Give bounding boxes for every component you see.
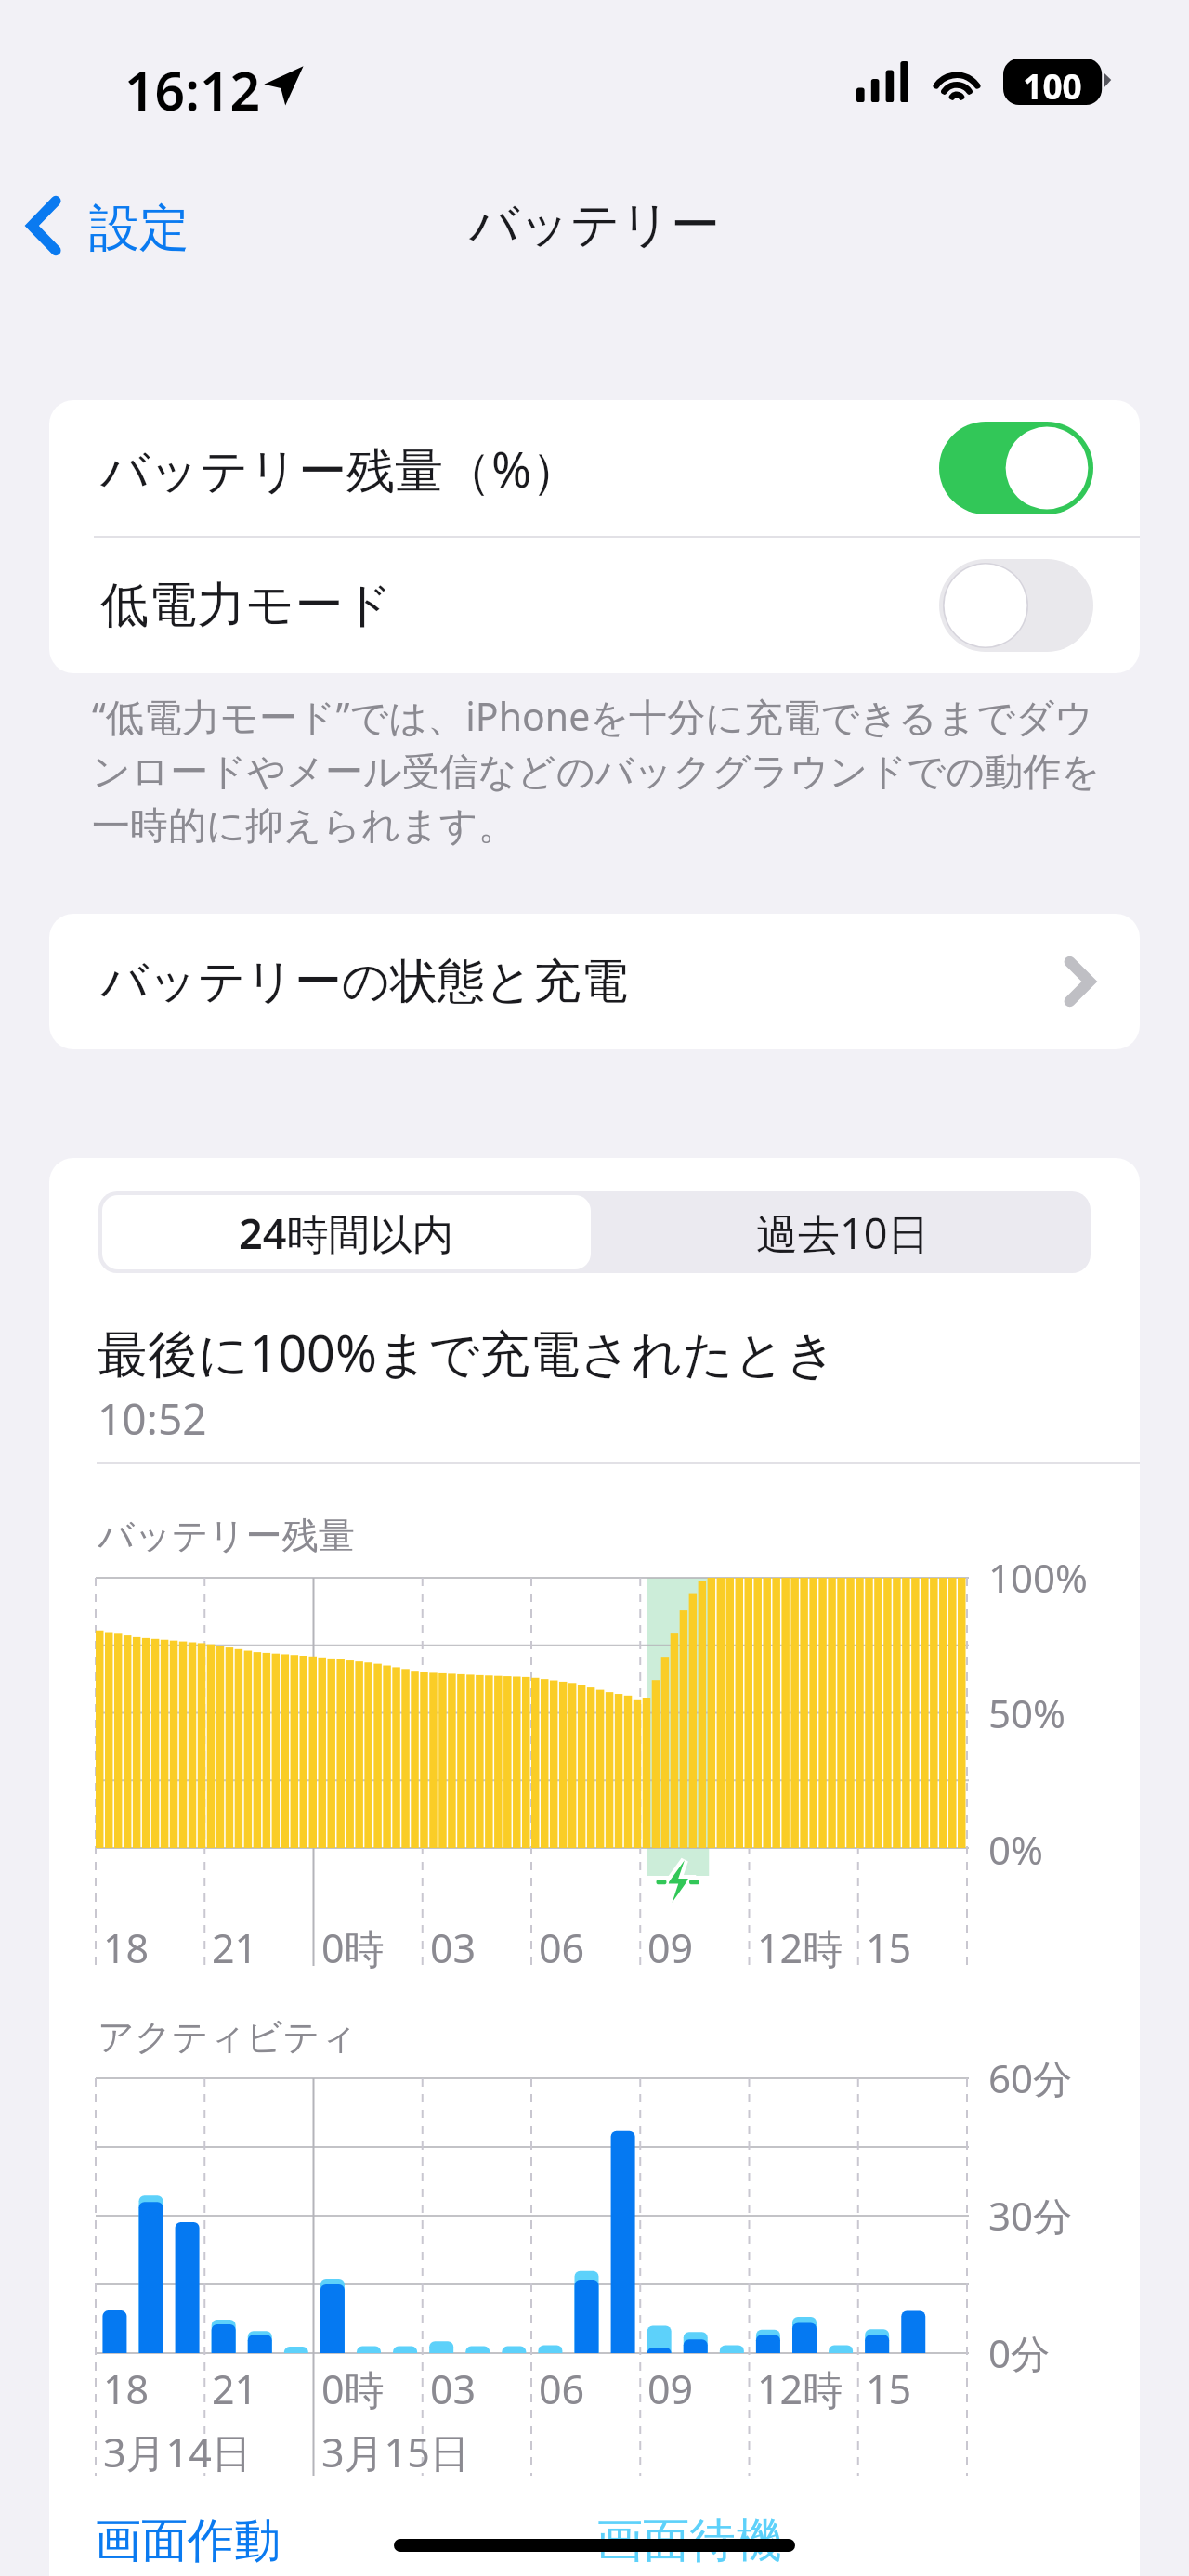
- button[interactable]: 設定: [18, 189, 197, 263]
- staticText: 低電力モード: [100, 575, 393, 636]
- staticText: 0時: [321, 2361, 385, 2416]
- staticText: 100: [1003, 62, 1102, 109]
- staticText: 過去10日: [756, 1204, 930, 1261]
- staticText: 09: [647, 2361, 694, 2416]
- other: Location: [263, 65, 304, 106]
- staticText: 03: [430, 2361, 477, 2416]
- staticText: 30分: [988, 2189, 1073, 2242]
- staticText: 0分: [988, 2326, 1051, 2379]
- staticText: 0%: [988, 1823, 1043, 1876]
- staticText: バッテリー残量: [98, 1513, 355, 1558]
- staticText: 15: [866, 1920, 912, 1975]
- staticText: 24時間以内: [239, 1204, 454, 1261]
- staticText: バッテリー: [0, 194, 1189, 256]
- staticText: バッテリー残量（%）: [100, 436, 581, 501]
- staticText: 21: [212, 2361, 258, 2416]
- staticText: 12時: [757, 1920, 843, 1975]
- staticText: バッテリーの状態と充電: [100, 952, 629, 1011]
- staticText: 09: [647, 1920, 694, 1975]
- staticText: 18: [103, 1920, 150, 1975]
- staticText: 設定: [89, 197, 189, 260]
- staticText: 100%: [988, 1551, 1088, 1604]
- button[interactable]: 24時間以内: [102, 1195, 591, 1269]
- staticText: アクティビティ: [98, 2014, 358, 2060]
- button[interactable]: Toggle on: [939, 422, 1093, 514]
- staticText: 画面作動: [95, 2512, 281, 2570]
- staticText: 60分: [988, 2051, 1073, 2104]
- button[interactable]: 過去10日: [594, 1191, 1091, 1273]
- staticText: 21: [212, 1920, 258, 1975]
- staticText: 06: [539, 1920, 585, 1975]
- staticText: 50%: [988, 1686, 1065, 1739]
- button[interactable]: バッテリー残量（%）: [49, 400, 1140, 536]
- button[interactable]: Toggle off: [939, 559, 1093, 652]
- staticText: 3月15日: [321, 2425, 470, 2479]
- staticText: 画面待機: [596, 2512, 782, 2570]
- staticText: 12時: [757, 2361, 843, 2416]
- staticText: 最後に100%まで充電されたとき: [98, 1318, 837, 1386]
- staticText: 0時: [321, 1920, 385, 1975]
- staticText: 10:52: [98, 1389, 207, 1448]
- staticText: 06: [539, 2361, 585, 2416]
- button[interactable]: 低電力モード: [49, 538, 1140, 673]
- staticText: 16:12: [124, 54, 261, 126]
- staticText: 03: [430, 1920, 477, 1975]
- button[interactable]: バッテリーの状態と充電: [49, 914, 1140, 1049]
- staticText: “低電力モード”では、iPhoneを十分に充電できるまでダウンロードやメール受信…: [92, 690, 1112, 850]
- staticText: 15: [866, 2361, 912, 2416]
- staticText: 3月14日: [103, 2425, 252, 2479]
- staticText: 18: [103, 2361, 150, 2416]
